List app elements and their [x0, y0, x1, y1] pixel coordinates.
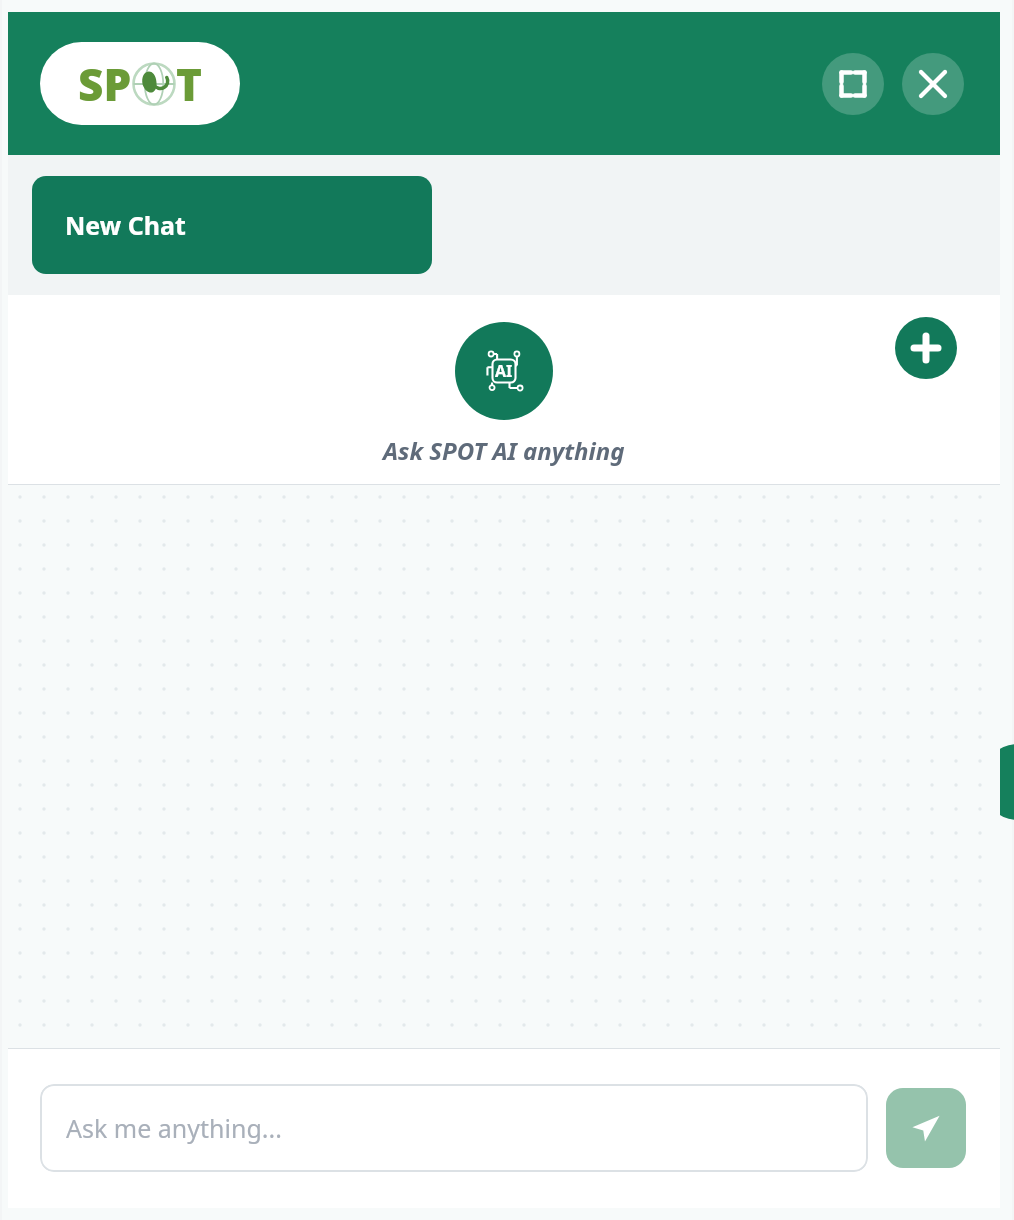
staticText: AI — [495, 360, 513, 382]
button[interactable]: Close — [902, 53, 964, 115]
staticText: T — [176, 54, 203, 114]
button[interactable]: Ask me anything... — [40, 1084, 868, 1172]
button[interactable]: New Chat — [32, 176, 432, 274]
staticText: Ask me anything... — [66, 1111, 282, 1145]
staticText: SP — [78, 54, 132, 114]
button[interactable]: Fullscreen — [822, 53, 884, 115]
button[interactable]: SPOT AI — [40, 42, 240, 125]
staticText: Ask SPOT AI anything — [383, 434, 625, 467]
button[interactable]: Send — [886, 1088, 966, 1168]
button[interactable]: SPOT AI assistant — [455, 322, 553, 420]
button[interactable]: New conversation — [895, 317, 957, 379]
staticText: New Chat — [65, 208, 186, 242]
